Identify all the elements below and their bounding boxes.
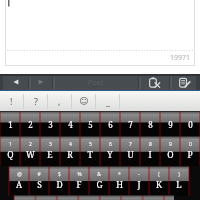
- staticText: 0: [189, 141, 192, 148]
- button[interactable]: [14, 195, 39, 200]
- staticText: 3: [48, 119, 53, 130]
- button[interactable]: ,: [48, 91, 71, 111]
- button[interactable]: 0: [180, 111, 200, 137]
- button[interactable]: 2: [20, 136, 40, 166]
- staticText: 8: [149, 141, 152, 148]
- button[interactable]: #: [29, 166, 49, 196]
- button[interactable]: [164, 195, 174, 200]
- staticText: 8: [148, 119, 153, 130]
- staticText: 1: [9, 141, 12, 148]
- staticText: R: [67, 149, 73, 161]
- staticText: 6: [108, 119, 113, 130]
- button[interactable]: 4: [60, 111, 80, 137]
- staticText: @: [17, 171, 22, 178]
- button[interactable]: Edit note: [171, 74, 197, 90]
- staticText: 5: [89, 141, 92, 148]
- button[interactable]: (: [149, 166, 169, 196]
- staticText: 3: [49, 141, 52, 148]
- button[interactable]: &: [89, 166, 109, 196]
- staticText: U: [127, 149, 134, 161]
- staticText: G: [96, 179, 103, 191]
- button[interactable]: ): [169, 166, 189, 196]
- staticText: ☺: [79, 96, 89, 106]
- staticText: %: [77, 171, 82, 178]
- button[interactable]: @: [9, 166, 29, 196]
- staticText: *: [118, 171, 121, 178]
- staticText: Q: [7, 149, 14, 161]
- button[interactable]: [64, 195, 89, 200]
- staticText: O: [167, 149, 174, 161]
- button[interactable]: %: [69, 166, 89, 196]
- staticText: 7: [128, 119, 133, 130]
- staticText: (: [158, 171, 160, 178]
- staticText: E: [47, 149, 53, 161]
- button[interactable]: [139, 195, 164, 200]
- button[interactable]: 6: [100, 111, 120, 137]
- button[interactable]: 4: [60, 136, 80, 166]
- button[interactable]: ☺: [72, 91, 95, 111]
- staticText: 0: [188, 119, 193, 130]
- button[interactable]: 9: [160, 111, 180, 137]
- button[interactable]: *: [109, 166, 129, 196]
- staticText: 6: [109, 141, 112, 148]
- staticText: 1: [8, 119, 13, 130]
- button[interactable]: 5: [80, 136, 100, 166]
- staticText: _: [106, 95, 110, 107]
- button[interactable]: !: [0, 91, 23, 111]
- staticText: K: [156, 179, 162, 191]
- button[interactable]: 1: [0, 111, 20, 137]
- staticText: #: [37, 171, 41, 178]
- button[interactable]: $: [49, 166, 69, 196]
- staticText: P: [187, 149, 193, 161]
- staticText: J: [137, 179, 141, 191]
- staticText: 5: [88, 119, 93, 130]
- staticText: 9: [169, 141, 172, 148]
- button[interactable]: Post: [54, 74, 138, 90]
- button[interactable]: 7: [120, 136, 140, 166]
- button[interactable]: Clear clipboard: [140, 74, 169, 90]
- button[interactable]: 1: [0, 136, 20, 166]
- staticText: Post: [88, 77, 104, 87]
- staticText: A: [16, 179, 22, 191]
- button[interactable]: Previous: [3, 74, 28, 90]
- staticText: ): [178, 171, 180, 178]
- staticText: D: [56, 179, 63, 191]
- button[interactable]: Next: [30, 74, 52, 90]
- button[interactable]: ?: [24, 91, 47, 111]
- button[interactable]: 2: [20, 111, 40, 137]
- button[interactable]: 0: [180, 136, 200, 166]
- staticText: ?: [34, 95, 38, 107]
- staticText: T: [87, 149, 93, 161]
- staticText: Y: [107, 149, 113, 161]
- staticText: W: [26, 149, 35, 161]
- button[interactable]: 3: [40, 111, 60, 137]
- staticText: $: [58, 171, 61, 178]
- staticText: 4: [68, 119, 73, 130]
- staticText: S: [37, 179, 42, 191]
- button[interactable]: 8: [140, 136, 160, 166]
- staticText: &: [97, 171, 101, 178]
- button[interactable]: 5: [80, 111, 100, 137]
- button[interactable]: 9: [160, 136, 180, 166]
- staticText: 2: [28, 119, 33, 130]
- button[interactable]: _: [96, 91, 119, 111]
- button[interactable]: [89, 195, 114, 200]
- button[interactable]: -: [129, 166, 149, 196]
- staticText: F: [76, 179, 82, 191]
- button[interactable]: 8: [140, 111, 160, 137]
- staticText: H: [116, 179, 123, 191]
- staticText: ,: [58, 95, 61, 107]
- button[interactable]: 7: [120, 111, 140, 137]
- staticText: 7: [129, 141, 132, 148]
- staticText: I: [148, 149, 152, 161]
- staticText: 9: [168, 119, 173, 130]
- button[interactable]: [114, 195, 139, 200]
- staticText: 4: [69, 141, 72, 148]
- staticText: -: [138, 171, 140, 178]
- staticText: 2: [29, 141, 32, 148]
- staticText: 19971: [170, 53, 191, 63]
- staticText: !: [10, 95, 13, 107]
- button[interactable]: [39, 195, 64, 200]
- button[interactable]: 3: [40, 136, 60, 166]
- button[interactable]: 6: [100, 136, 120, 166]
